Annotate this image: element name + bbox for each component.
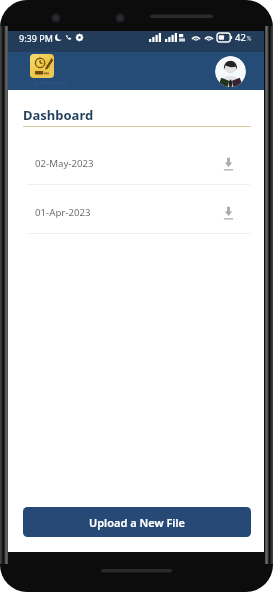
staticText: 42: [235, 31, 246, 44]
button[interactable]: Download: [223, 157, 234, 171]
staticText: Upload a New File: [89, 515, 185, 530]
staticText: Dashboard: [34, 79, 67, 87]
button[interactable]: Upload a New File: [23, 507, 251, 537]
staticText: 9:39 PM: [19, 32, 53, 44]
staticText: 01-Apr-2023: [35, 206, 91, 219]
button[interactable]: 02-May-2023: [8, 136, 264, 184]
button[interactable]: Download: [223, 206, 234, 220]
staticText: Dashboard: [23, 106, 94, 124]
staticText: 02-May-2023: [35, 157, 94, 170]
button[interactable]: 01-Apr-2023: [8, 185, 264, 233]
button[interactable]: CDT app logo: [30, 54, 54, 78]
button[interactable]: Profile: [215, 56, 246, 87]
